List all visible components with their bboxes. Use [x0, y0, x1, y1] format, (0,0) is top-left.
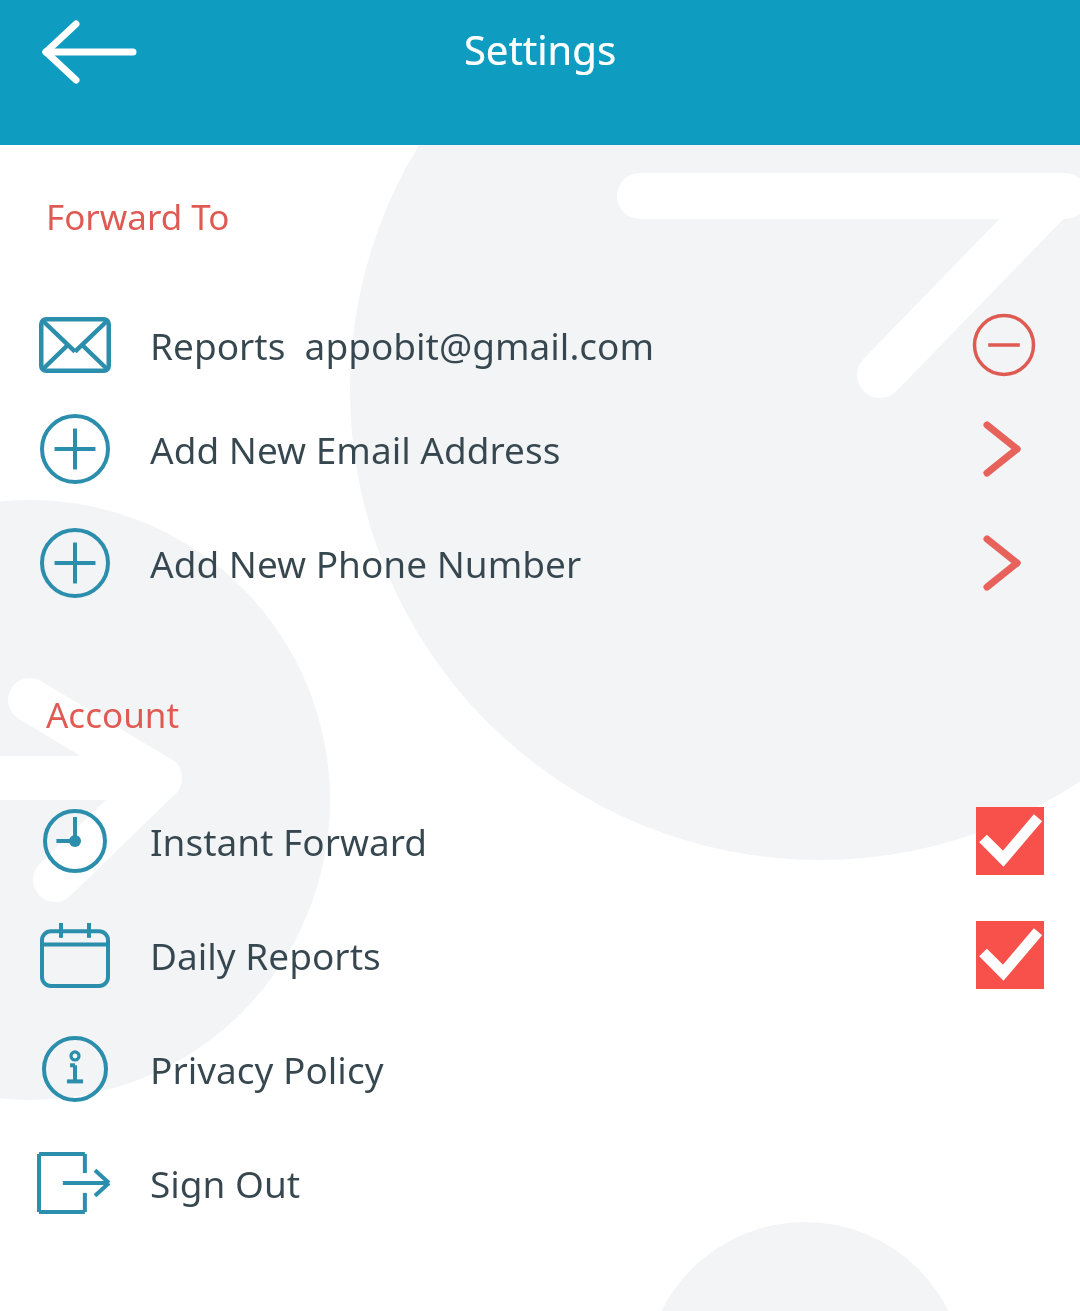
staticText: Daily Reports — [150, 930, 381, 980]
button[interactable]: Add New Email Address — [0, 399, 1080, 499]
button[interactable]: Reports appobit@gmail.com — [0, 295, 1080, 395]
staticText: Reports appobit@gmail.com — [150, 320, 655, 370]
staticText: Instant Forward — [150, 816, 428, 866]
button[interactable]: Instant Forward — [0, 791, 1080, 891]
button[interactable]: Open Add New Email Address — [954, 401, 1050, 497]
button[interactable]: Sign Out — [0, 1133, 1080, 1233]
button[interactable]: Privacy Policy — [0, 1019, 1080, 1119]
staticText: Privacy Policy — [150, 1044, 384, 1094]
button[interactable]: Instant Forward enabled — [962, 793, 1058, 889]
button[interactable]: Open Add New Phone Number — [954, 515, 1050, 611]
button[interactable]: Add New Phone Number — [0, 513, 1080, 613]
staticText: Add New Phone Number — [150, 538, 582, 588]
staticText: Account — [46, 691, 180, 739]
button[interactable]: Remove — [956, 297, 1052, 393]
button[interactable]: Daily Reports — [0, 905, 1080, 1005]
staticText: Forward To — [46, 193, 230, 241]
button[interactable]: Back — [18, 8, 118, 108]
button[interactable]: Daily Reports enabled — [962, 907, 1058, 1003]
staticText: Add New Email Address — [150, 424, 561, 474]
staticText: Sign Out — [150, 1158, 301, 1208]
staticText: Settings — [0, 22, 1080, 76]
